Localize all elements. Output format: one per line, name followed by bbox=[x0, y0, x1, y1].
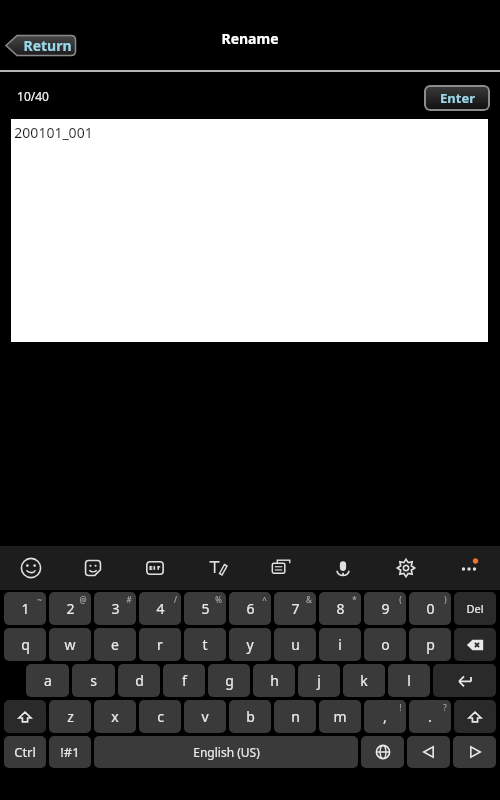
button[interactable]: Stickers bbox=[62, 546, 124, 590]
button[interactable]: English (US) bbox=[94, 736, 358, 768]
button[interactable]: Del bbox=[454, 592, 496, 625]
staticText: # bbox=[126, 594, 132, 605]
staticText: m bbox=[333, 707, 347, 726]
button[interactable]: q bbox=[4, 628, 46, 661]
staticText: o bbox=[381, 635, 390, 654]
staticText: n bbox=[291, 707, 300, 726]
staticText: ^ bbox=[262, 594, 267, 605]
button[interactable]: c bbox=[139, 700, 181, 733]
button[interactable]: w bbox=[49, 628, 91, 661]
button[interactable]: . bbox=[409, 700, 451, 733]
button[interactable]: More bbox=[437, 546, 500, 590]
staticText: k bbox=[360, 671, 368, 690]
staticText: Rename bbox=[221, 29, 279, 48]
staticText: d bbox=[135, 671, 144, 690]
staticText: ? bbox=[443, 702, 447, 713]
button[interactable]: z bbox=[49, 700, 91, 733]
button[interactable]: l bbox=[388, 664, 430, 697]
button[interactable]: Move cursor left bbox=[407, 736, 450, 768]
button[interactable]: y bbox=[229, 628, 271, 661]
button[interactable]: v bbox=[184, 700, 226, 733]
button[interactable]: d bbox=[118, 664, 160, 697]
button[interactable]: k bbox=[343, 664, 385, 697]
button[interactable]: o bbox=[364, 628, 406, 661]
staticText: b bbox=[246, 707, 255, 726]
staticText: Ctrl bbox=[14, 743, 36, 761]
staticText: y bbox=[246, 635, 254, 654]
button[interactable]: Emoji bbox=[0, 546, 62, 590]
staticText: 6 bbox=[246, 599, 255, 618]
button[interactable]: u bbox=[274, 628, 316, 661]
staticText: 2 bbox=[66, 599, 75, 618]
button[interactable]: t bbox=[184, 628, 226, 661]
staticText: 3 bbox=[111, 599, 120, 618]
staticText: c bbox=[157, 707, 164, 726]
button[interactable]: Ctrl bbox=[4, 736, 46, 768]
staticText: u bbox=[291, 635, 300, 654]
button[interactable]: e bbox=[94, 628, 136, 661]
button[interactable]: 4 bbox=[139, 592, 181, 625]
staticText: * bbox=[352, 594, 357, 605]
button[interactable]: Handwriting bbox=[186, 546, 248, 590]
staticText: & bbox=[306, 594, 312, 605]
button[interactable]: , bbox=[364, 700, 406, 733]
button[interactable]: f bbox=[163, 664, 205, 697]
button[interactable]: m bbox=[319, 700, 361, 733]
button[interactable]: g bbox=[208, 664, 250, 697]
button[interactable]: s bbox=[72, 664, 115, 697]
button[interactable]: 8 bbox=[319, 592, 361, 625]
staticText: 200101_001 bbox=[14, 123, 93, 142]
button[interactable]: i bbox=[319, 628, 361, 661]
staticText: t bbox=[202, 635, 208, 654]
staticText: . bbox=[428, 707, 432, 726]
button[interactable]: 7 bbox=[274, 592, 316, 625]
button[interactable]: Return bbox=[6, 34, 76, 57]
staticText: 9 bbox=[381, 599, 390, 618]
button[interactable]: Enter bbox=[424, 85, 490, 111]
button[interactable]: GIF bbox=[124, 546, 186, 590]
button[interactable]: x bbox=[94, 700, 136, 733]
staticText: r bbox=[157, 635, 163, 654]
button[interactable]: h bbox=[253, 664, 295, 697]
button[interactable]: n bbox=[274, 700, 316, 733]
staticText: ( bbox=[399, 594, 402, 605]
staticText: , bbox=[383, 707, 387, 726]
staticText: Return bbox=[23, 36, 72, 55]
button[interactable]: 2 bbox=[49, 592, 91, 625]
button[interactable]: a bbox=[26, 664, 69, 697]
button[interactable]: Voice input bbox=[311, 546, 374, 590]
staticText: j bbox=[317, 671, 321, 690]
staticText: 0 bbox=[426, 599, 435, 618]
staticText: h bbox=[270, 671, 279, 690]
button[interactable]: b bbox=[229, 700, 271, 733]
staticText: ) bbox=[444, 594, 447, 605]
button[interactable]: 200101_001 bbox=[11, 119, 488, 342]
button[interactable]: Shift bbox=[4, 700, 46, 733]
staticText: f bbox=[182, 671, 187, 690]
button[interactable]: 5 bbox=[184, 592, 226, 625]
button[interactable]: p bbox=[409, 628, 451, 661]
staticText: 10/40 bbox=[17, 88, 49, 104]
button[interactable]: r bbox=[139, 628, 181, 661]
staticText: !#1 bbox=[60, 743, 80, 761]
staticText: % bbox=[215, 594, 222, 605]
button[interactable]: 3 bbox=[94, 592, 136, 625]
button[interactable]: 1 bbox=[4, 592, 46, 625]
button[interactable]: Clipboard bbox=[248, 546, 311, 590]
button[interactable]: Change language bbox=[361, 736, 404, 768]
staticText: w bbox=[64, 635, 76, 654]
staticText: p bbox=[426, 635, 435, 654]
staticText: a bbox=[44, 671, 52, 690]
button[interactable]: 0 bbox=[409, 592, 451, 625]
staticText: ~ bbox=[37, 594, 42, 605]
button[interactable]: Shift bbox=[454, 700, 496, 733]
button[interactable]: 6 bbox=[229, 592, 271, 625]
button[interactable]: !#1 bbox=[49, 736, 91, 768]
button[interactable]: Move cursor right bbox=[453, 736, 496, 768]
button[interactable]: j bbox=[298, 664, 340, 697]
button[interactable]: Enter bbox=[433, 664, 496, 697]
staticText: i bbox=[338, 635, 342, 654]
button[interactable]: Backspace bbox=[454, 628, 496, 661]
button[interactable]: 9 bbox=[364, 592, 406, 625]
button[interactable]: Settings bbox=[374, 546, 437, 590]
